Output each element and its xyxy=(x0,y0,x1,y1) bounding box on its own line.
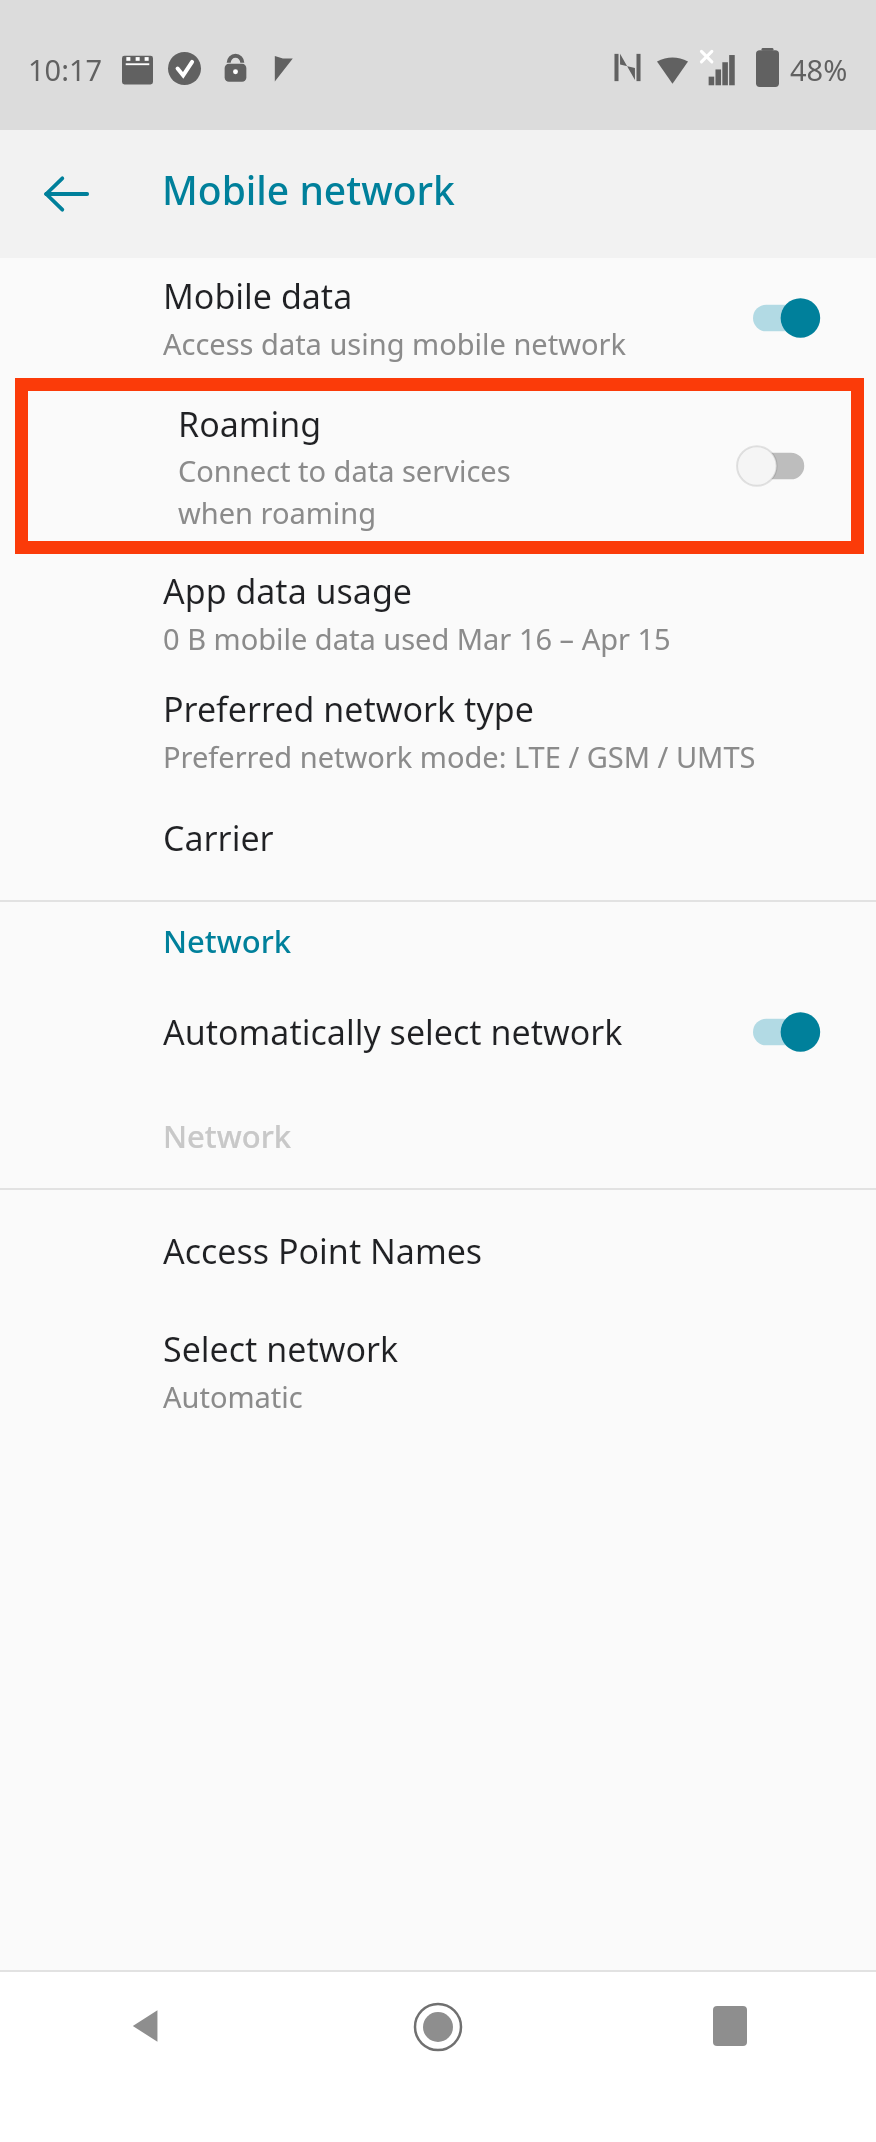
button[interactable]: Home xyxy=(292,1972,584,2142)
button[interactable]: Carrier xyxy=(0,790,876,886)
staticText: Connect to data services when roaming xyxy=(178,451,578,532)
staticText: Select network xyxy=(163,1326,399,1372)
button[interactable]: Back xyxy=(0,1972,292,2142)
staticText: 48% xyxy=(790,50,848,89)
button[interactable] xyxy=(753,295,821,341)
staticText: 10:17 xyxy=(28,50,103,89)
staticText: Network xyxy=(163,1115,292,1157)
staticText: Mobile network xyxy=(162,163,455,216)
button[interactable]: Automatically select network xyxy=(0,980,876,1084)
button[interactable] xyxy=(753,1009,821,1055)
staticText: Network xyxy=(163,920,292,962)
button[interactable]: Back xyxy=(28,156,104,232)
button[interactable]: Roaming xyxy=(28,391,851,541)
staticText: Mobile data xyxy=(163,273,353,319)
staticText: Access data using mobile network xyxy=(163,324,626,363)
staticText: Roaming xyxy=(178,401,322,447)
staticText: 0 B mobile data used Mar 16 – Apr 15 xyxy=(163,619,671,658)
button[interactable]: Access Point Names xyxy=(0,1190,876,1312)
staticText: Automatically select network xyxy=(163,1009,623,1055)
button[interactable]: Recents xyxy=(584,1972,876,2142)
button[interactable]: Preferred network type xyxy=(0,672,876,790)
button[interactable]: App data usage xyxy=(0,554,876,672)
staticText: Automatic xyxy=(163,1377,303,1416)
staticText: Carrier xyxy=(163,815,274,861)
button[interactable] xyxy=(741,443,809,489)
button[interactable]: Mobile data xyxy=(0,258,876,378)
button[interactable]: Select network xyxy=(0,1312,876,1430)
staticText: Preferred network type xyxy=(163,686,534,732)
staticText: App data usage xyxy=(163,568,413,614)
staticText: Access Point Names xyxy=(163,1228,483,1274)
staticText: Preferred network mode: LTE / GSM / UMTS xyxy=(163,737,756,776)
